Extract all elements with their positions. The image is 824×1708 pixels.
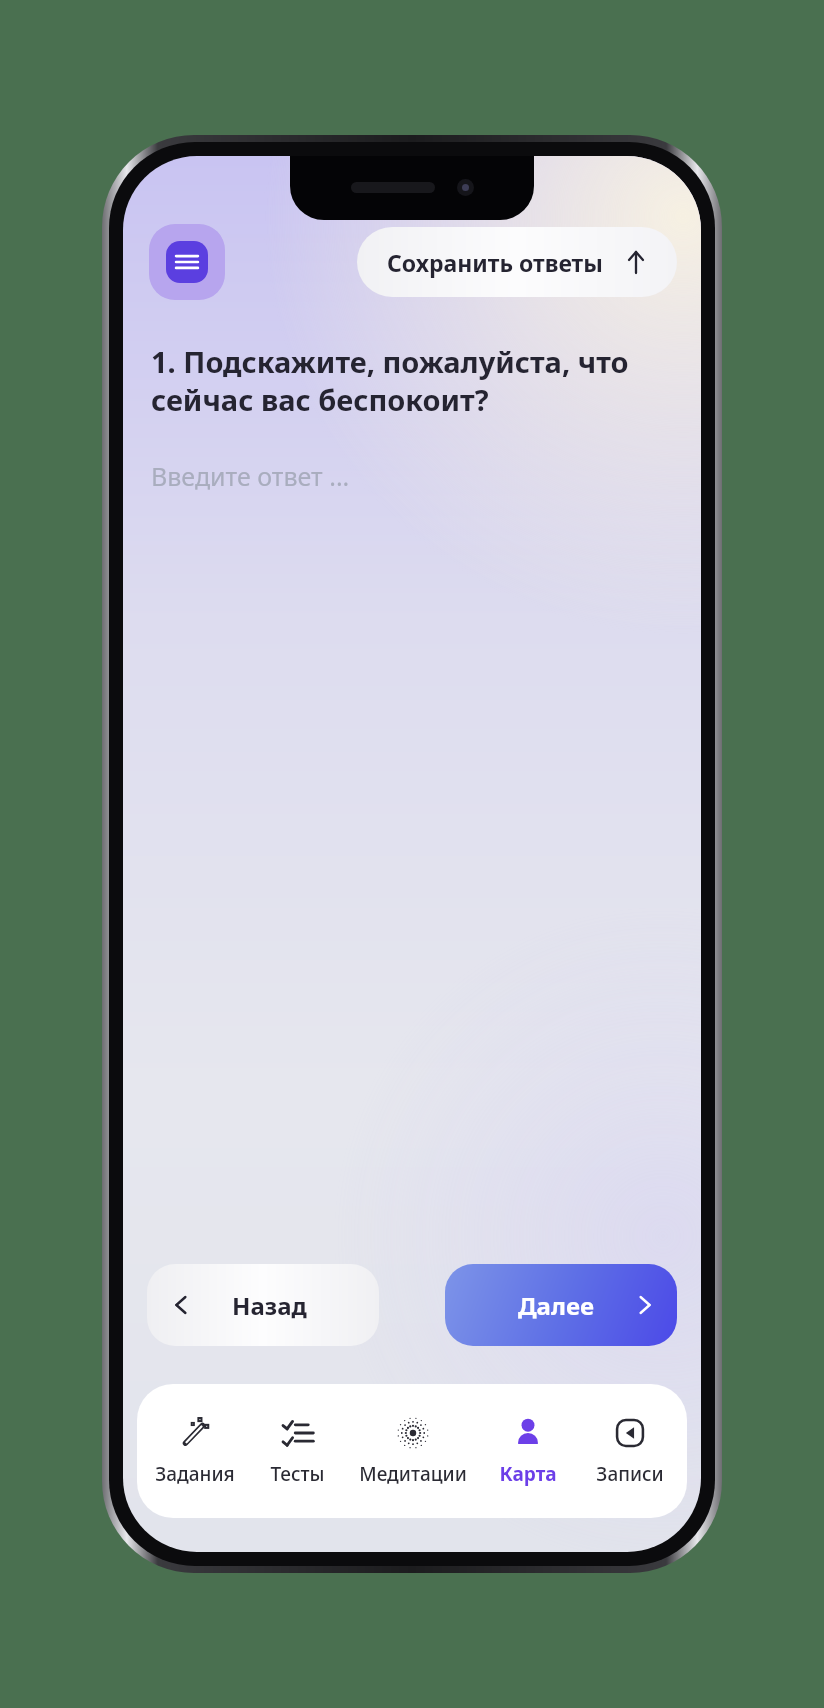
staticText: Медитации bbox=[359, 1461, 467, 1487]
staticText: Тесты bbox=[270, 1461, 325, 1487]
button[interactable]: Menu bbox=[149, 224, 225, 300]
button[interactable]: Тесты bbox=[246, 1384, 349, 1518]
button[interactable]: Далее bbox=[445, 1264, 677, 1346]
staticText: 1. Подскажите, пожалуйста, что сейчас ва… bbox=[151, 342, 629, 419]
staticText: Задания bbox=[155, 1461, 235, 1487]
staticText: Записи bbox=[596, 1461, 664, 1487]
button[interactable]: Введите ответ ... bbox=[151, 459, 673, 493]
staticText: Карта bbox=[499, 1461, 557, 1487]
button[interactable]: Карта bbox=[477, 1384, 579, 1518]
staticText: Назад bbox=[232, 1289, 307, 1322]
button[interactable]: Задания bbox=[143, 1384, 246, 1518]
staticText: Далее bbox=[518, 1289, 594, 1322]
button[interactable]: Записи bbox=[579, 1384, 681, 1518]
button[interactable]: Медитации bbox=[349, 1384, 477, 1518]
button[interactable]: Сохранить ответы bbox=[357, 227, 677, 297]
button[interactable]: Назад bbox=[147, 1264, 379, 1346]
staticText: Сохранить ответы bbox=[387, 247, 603, 278]
